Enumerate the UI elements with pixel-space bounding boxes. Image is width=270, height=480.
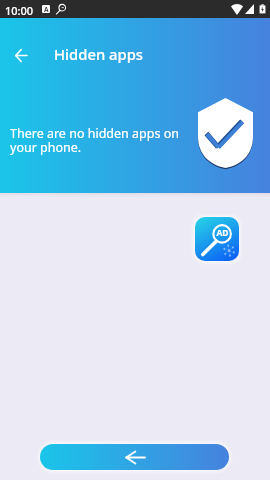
button[interactable]: Ad detector [195, 217, 239, 261]
staticText: AD [216, 227, 229, 239]
button[interactable]: Back [8, 42, 34, 68]
staticText: Hidden apps [54, 44, 144, 64]
staticText: A [44, 5, 49, 13]
button[interactable]: Back [40, 444, 229, 470]
staticText: There are no hidden apps on your phone. [10, 125, 190, 155]
staticText: 10:00 [5, 3, 34, 18]
